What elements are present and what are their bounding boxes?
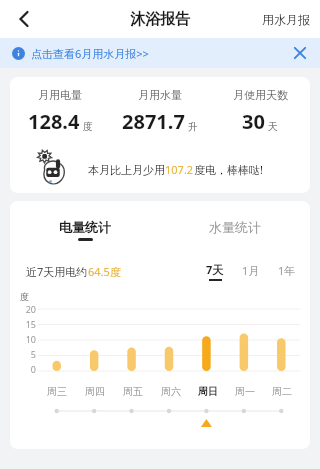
staticText: 15 [18, 318, 36, 330]
staticText: 7天 [206, 262, 224, 277]
staticText: 1月 [242, 263, 260, 278]
staticText: 水量统计 [209, 219, 261, 235]
staticText: 月用水量 [138, 88, 182, 102]
staticText: 周日 [198, 385, 218, 398]
staticText: 0 [18, 363, 36, 375]
staticText: 天 [268, 120, 278, 133]
staticText: 128.4 [28, 108, 80, 135]
staticText: 用水月报 [262, 12, 310, 27]
staticText: 周四 [85, 385, 105, 398]
staticText: 度电，棒棒哒! [194, 162, 263, 177]
button[interactable]: 周二 [270, 383, 294, 400]
staticText: 107.2 [165, 162, 194, 177]
button[interactable]: 1年 [278, 263, 296, 280]
staticText: 周二 [272, 385, 292, 398]
button[interactable]: 周三 [45, 383, 69, 400]
button[interactable]: 水量统计 [205, 215, 265, 245]
staticText: 64.5度 [88, 264, 121, 279]
button[interactable]: 周六 [159, 383, 183, 400]
staticText: 20 [18, 303, 36, 315]
button[interactable]: 7天 [206, 262, 224, 281]
staticText: 沐浴报告 [130, 10, 190, 29]
button[interactable]: 周一 [233, 383, 257, 400]
staticText: 周三 [47, 385, 67, 398]
button[interactable]: Close [286, 39, 314, 67]
staticText: 1年 [278, 263, 296, 278]
button[interactable]: 周日 [196, 383, 220, 400]
button[interactable]: 点击查看6月用水月报>> [0, 38, 320, 68]
staticText: 30 [242, 108, 265, 135]
staticText: 点击查看6月用水月报>> [31, 46, 149, 61]
button[interactable]: 1月 [242, 263, 260, 280]
staticText: 升 [188, 120, 198, 133]
staticText: 度 [20, 291, 29, 302]
staticText: 周六 [161, 385, 181, 398]
staticText: 月使用天数 [233, 88, 288, 102]
button[interactable]: 周四 [83, 383, 107, 400]
staticText: 月用电量 [38, 88, 82, 102]
button[interactable]: 电量统计 [55, 215, 115, 245]
button[interactable]: 用水月报 [252, 6, 320, 33]
staticText: 度 [83, 120, 93, 133]
staticText: 周五 [123, 385, 143, 398]
staticText: 周一 [235, 385, 255, 398]
staticText: 2871.7 [122, 108, 185, 135]
button[interactable]: Back [6, 2, 40, 36]
staticText: 电量统计 [59, 219, 111, 235]
staticText: 5 [18, 348, 36, 360]
staticText: 近7天用电约 [26, 264, 88, 279]
staticText: 10 [18, 333, 36, 345]
button[interactable]: 周五 [121, 383, 145, 400]
staticText: 本月比上月少用 [88, 163, 165, 177]
